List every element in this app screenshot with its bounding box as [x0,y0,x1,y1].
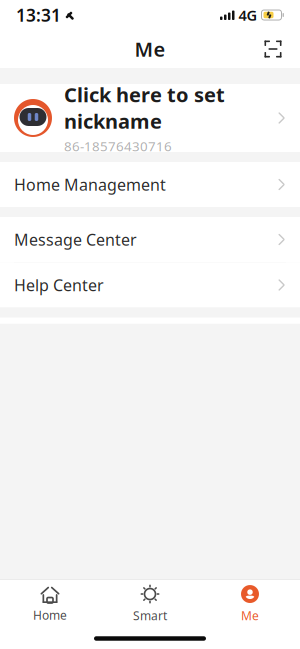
staticText: Me [134,36,165,62]
button[interactable]: Settings [0,317,300,362]
staticText: Me [241,607,259,623]
button[interactable]: Help Center [0,262,300,307]
staticText: Help Center [14,274,104,296]
button[interactable]: Message Center [0,217,300,262]
staticText: Click here to set nickname [64,81,225,134]
staticText: 86-18576430716 [64,137,172,155]
button[interactable]: Click here to set nickname [0,84,300,152]
staticText: Home Management [14,174,166,195]
button[interactable]: Home [0,582,100,626]
button[interactable]: Smart [100,582,200,626]
staticText: 4G [238,5,257,25]
staticText: 13:31 [16,3,61,26]
button[interactable]: Me [200,582,300,626]
staticText: Home [33,607,67,623]
button[interactable]: Home Management [0,162,300,207]
button[interactable]: Scan QR code [256,32,290,66]
staticText: Smart [133,607,167,623]
staticText: Message Center [14,229,137,250]
